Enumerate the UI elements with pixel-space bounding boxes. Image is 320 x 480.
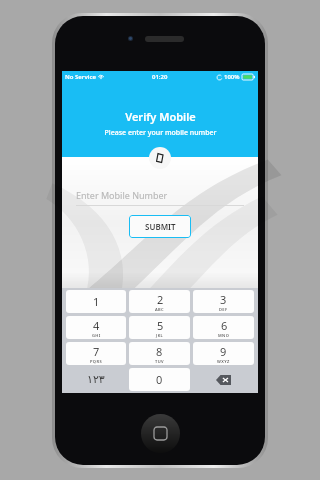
staticText: ١٢٣ bbox=[87, 373, 105, 386]
button[interactable]: 8 bbox=[129, 342, 190, 365]
button[interactable]: 9 bbox=[193, 342, 254, 365]
button[interactable]: 7 bbox=[66, 342, 126, 365]
staticText: 5 bbox=[157, 318, 164, 333]
staticText: 3 bbox=[220, 292, 227, 307]
button[interactable]: ١٢٣ bbox=[66, 368, 126, 391]
staticText: MNO bbox=[218, 333, 230, 338]
staticText: 0 bbox=[156, 372, 163, 387]
button[interactable]: 4 bbox=[66, 316, 126, 339]
staticText: 100% bbox=[224, 73, 240, 81]
button[interactable]: 3 bbox=[193, 290, 254, 313]
button[interactable]: SUBMIT bbox=[129, 215, 191, 238]
button[interactable]: 5 bbox=[129, 316, 190, 339]
staticText: ABC bbox=[155, 307, 165, 312]
button[interactable]: 0 bbox=[129, 368, 190, 391]
staticText: PQRS bbox=[90, 359, 102, 364]
staticText: WXYZ bbox=[217, 359, 230, 364]
button[interactable]: 1 bbox=[66, 290, 126, 313]
staticText: DEF bbox=[219, 307, 228, 312]
staticText: 2 bbox=[157, 292, 164, 307]
staticText: 8 bbox=[156, 344, 163, 359]
staticText: TUV bbox=[155, 359, 164, 364]
staticText: 4 bbox=[93, 318, 100, 333]
staticText: 7 bbox=[93, 344, 100, 359]
staticText: 01:20 bbox=[152, 73, 168, 81]
button[interactable]: Backspace bbox=[193, 368, 254, 391]
staticText: GHI bbox=[92, 333, 101, 338]
button[interactable]: 2 bbox=[129, 290, 190, 313]
staticText: Enter Mobile Number bbox=[76, 189, 168, 201]
staticText: Please enter your mobile number bbox=[104, 128, 217, 138]
staticText: 1 bbox=[93, 294, 100, 309]
staticText: No Service bbox=[65, 73, 96, 81]
staticText: 6 bbox=[221, 318, 228, 333]
staticText: Verify Mobile bbox=[125, 109, 196, 124]
staticText: 9 bbox=[220, 344, 227, 359]
button[interactable]: 6 bbox=[193, 316, 254, 339]
staticText: JKL bbox=[156, 333, 164, 338]
staticText: SUBMIT bbox=[145, 221, 176, 232]
